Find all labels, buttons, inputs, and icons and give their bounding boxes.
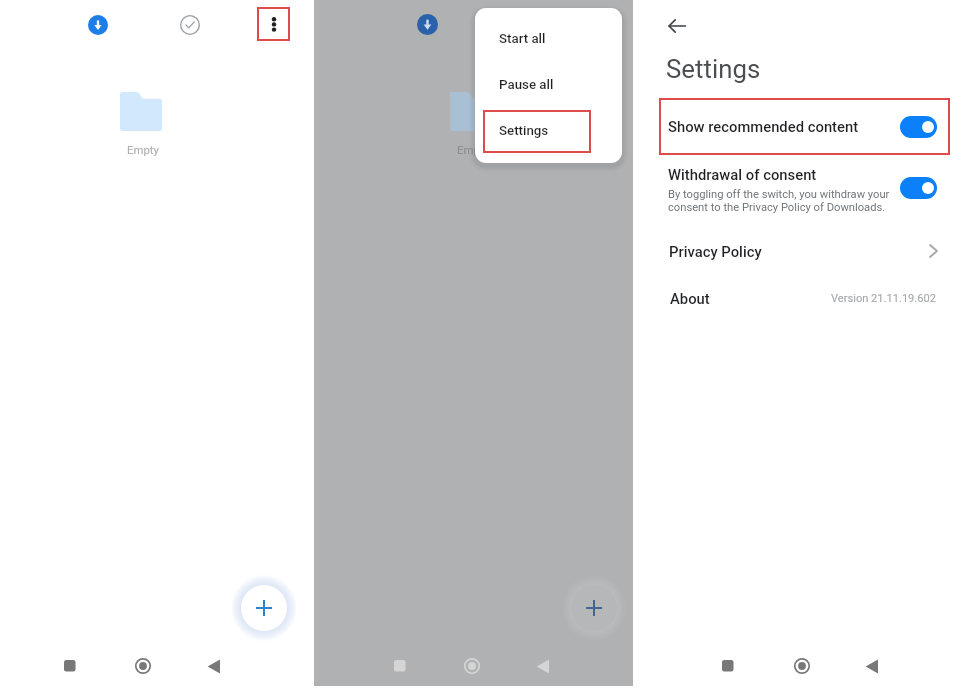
- staticText: About: [670, 290, 710, 307]
- staticText: Show recommended content: [668, 118, 859, 135]
- button[interactable]: Start all: [475, 16, 622, 62]
- staticText: Start all: [499, 31, 546, 47]
- button[interactable]: Back: [661, 12, 693, 40]
- staticText: Withdrawal of consent: [668, 166, 817, 183]
- button[interactable]: Home: [127, 650, 159, 682]
- staticText: Settings: [666, 54, 761, 84]
- button[interactable]: Pause all: [475, 62, 622, 108]
- button[interactable]: Recent apps: [384, 650, 416, 682]
- button[interactable]: Toggle setting: [900, 177, 937, 199]
- button[interactable]: Settings: [475, 108, 622, 154]
- button[interactable]: Add download: [571, 585, 617, 631]
- button[interactable]: Recent apps: [712, 650, 744, 682]
- button[interactable]: Recent apps: [54, 650, 86, 682]
- button[interactable]: Toggle setting: [900, 116, 937, 138]
- staticText: Empty: [457, 143, 489, 156]
- staticText: Pause all: [499, 77, 554, 93]
- button[interactable]: Back: [198, 650, 230, 682]
- button[interactable]: About: [659, 283, 950, 313]
- button[interactable]: Show recommended content: [659, 98, 950, 155]
- button[interactable]: More options: [257, 7, 290, 41]
- staticText: By toggling off the switch, you withdraw…: [668, 188, 890, 213]
- staticText: Privacy Policy: [669, 243, 762, 260]
- button[interactable]: Add download: [241, 585, 287, 631]
- staticText: Version 21.11.19.602: [831, 292, 936, 305]
- button[interactable]: Back: [856, 650, 888, 682]
- button[interactable]: Home: [456, 650, 488, 682]
- button[interactable]: Privacy Policy: [659, 235, 950, 267]
- button[interactable]: Back: [527, 650, 559, 682]
- button[interactable]: Downloading: [83, 10, 112, 39]
- staticText: Empty: [127, 143, 159, 156]
- button[interactable]: Home: [786, 650, 818, 682]
- staticText: Settings: [499, 123, 549, 139]
- button[interactable]: Completed: [175, 10, 204, 39]
